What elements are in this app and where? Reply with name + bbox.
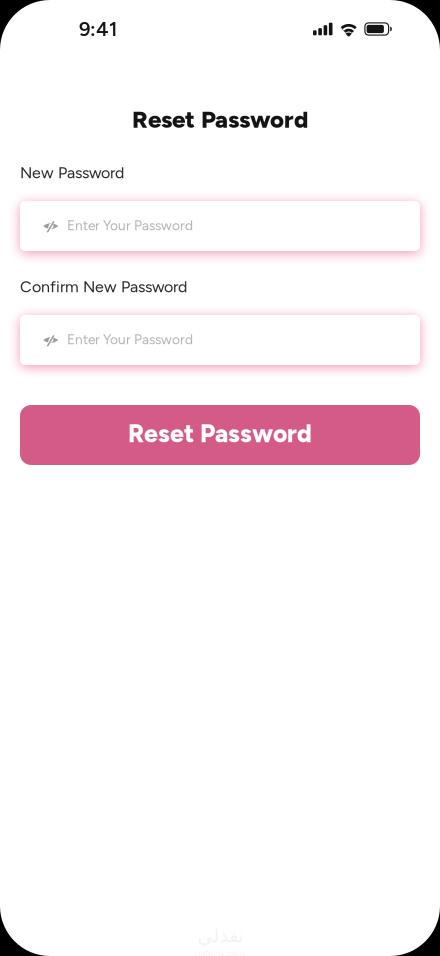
- button[interactable]: Show password: [20, 219, 58, 233]
- staticText: Enter Your Password: [67, 331, 193, 348]
- staticText: Confirm New Password: [20, 277, 187, 296]
- staticText: New Password: [20, 163, 124, 182]
- staticText: nofezly.com: [195, 948, 245, 956]
- staticText: Enter Your Password: [67, 217, 193, 234]
- button[interactable]: Show password: [20, 333, 58, 347]
- staticText: 9:41: [79, 17, 117, 41]
- staticText: Reset Password: [132, 105, 308, 134]
- button[interactable]: Enter Your Password: [20, 315, 420, 365]
- staticText: Reset Password: [128, 419, 312, 448]
- staticText: نفذلي: [197, 925, 243, 947]
- button[interactable]: Enter Your Password: [20, 201, 420, 251]
- button[interactable]: Reset Password: [20, 405, 420, 465]
